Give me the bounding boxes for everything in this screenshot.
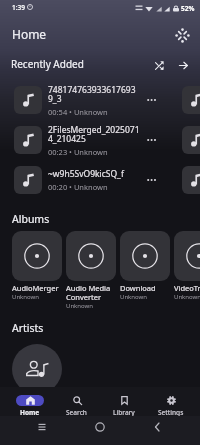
staticText: Download xyxy=(120,283,156,293)
button[interactable]: AudioMerger xyxy=(12,231,62,301)
button[interactable]: Library xyxy=(100,389,147,416)
staticText: 52% xyxy=(181,4,195,13)
button[interactable]: Download xyxy=(120,231,170,301)
staticText: Recently Added xyxy=(11,57,84,71)
button[interactable]: More options xyxy=(140,88,164,112)
button[interactable]: Refresh xyxy=(170,23,194,47)
button[interactable]: More options xyxy=(140,128,164,152)
button[interactable]: See all xyxy=(171,53,195,77)
staticText: Unknown xyxy=(66,302,93,310)
staticText: 1:39 xyxy=(12,3,25,12)
staticText: VideoTrim xyxy=(174,283,200,293)
button[interactable]: ~w9h5SvO9kicSQ_f xyxy=(8,160,176,200)
staticText: Settings xyxy=(158,408,184,416)
button[interactable]: More options xyxy=(140,168,164,192)
button[interactable]: 2FilesMerged_20250714_210425 xyxy=(8,120,176,160)
button[interactable] xyxy=(12,344,62,394)
staticText: Home xyxy=(20,408,40,416)
staticText: ~w9h5SvO9kicSQ_f xyxy=(48,168,124,180)
staticText: 00:20 • Unknown xyxy=(48,182,108,192)
staticText: 00:23 • Unknown xyxy=(48,147,108,157)
button[interactable]: 2FilesMerged_20250714_210425 xyxy=(176,120,200,160)
staticText: Unknown xyxy=(12,293,39,301)
staticText: Library xyxy=(113,408,135,416)
staticText: 2FilesMerged_20250714_210425 xyxy=(48,124,140,145)
button[interactable]: 7481747639336176939_3 xyxy=(176,80,200,120)
button[interactable]: Settings xyxy=(147,389,194,416)
button[interactable]: Shuffle xyxy=(147,53,171,77)
button[interactable]: Audio Media Converter xyxy=(66,231,116,310)
staticText: Unknown xyxy=(12,396,46,406)
staticText: Artists xyxy=(12,321,44,335)
staticText: Home xyxy=(12,26,47,42)
staticText: Unknown xyxy=(174,293,200,301)
staticText: AudioMerger xyxy=(12,283,59,293)
staticText: Albums xyxy=(12,212,50,226)
button[interactable]: Home xyxy=(6,389,53,416)
button[interactable]: Search xyxy=(53,389,100,416)
staticText: 7481747639336176939_3 xyxy=(48,84,140,105)
staticText: Search xyxy=(66,408,87,416)
button[interactable]: 7481747639336176939_3 xyxy=(8,80,176,120)
button[interactable]: ~w9h5SvO9kicSQ_f xyxy=(176,160,200,200)
staticText: 00:54 • Unknown xyxy=(48,107,108,117)
staticText: Unknown xyxy=(120,293,147,301)
staticText: Audio Media Converter xyxy=(66,283,111,302)
button[interactable]: VideoTrim xyxy=(174,231,200,301)
